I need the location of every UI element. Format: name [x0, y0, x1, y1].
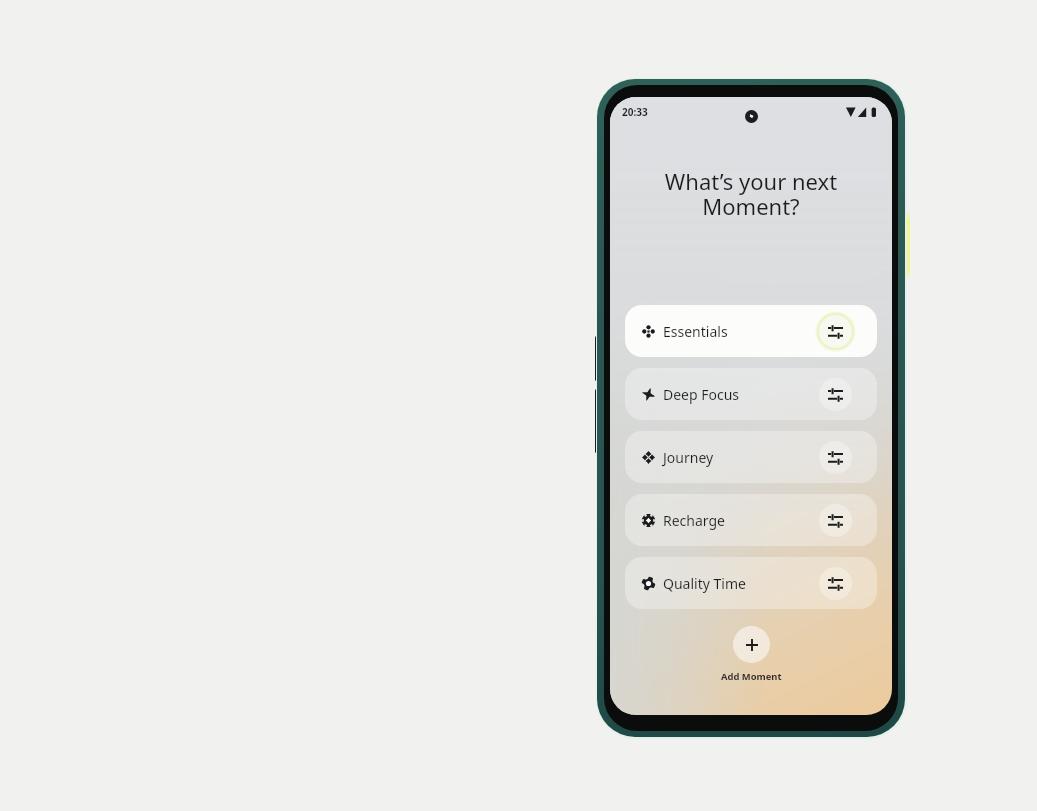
staticText: Essentials: [663, 322, 728, 341]
button[interactable]: Deep Focus: [625, 368, 877, 420]
button[interactable]: Adjust Journey: [815, 437, 856, 478]
button[interactable]: Add Moment: [733, 626, 770, 663]
button[interactable]: Quality Time: [625, 557, 877, 609]
staticText: Journey: [663, 448, 714, 467]
staticText: 20:33: [622, 105, 648, 119]
staticText: Deep Focus: [663, 385, 740, 404]
button[interactable]: Recharge: [625, 494, 877, 546]
staticText: Recharge: [663, 511, 725, 530]
staticText: Quality Time: [663, 574, 746, 593]
staticText: Add Moment: [721, 670, 782, 683]
button[interactable]: Adjust Recharge: [815, 500, 856, 541]
button[interactable]: Adjust Essentials: [815, 311, 856, 352]
button[interactable]: Journey: [625, 431, 877, 483]
button[interactable]: Essentials: [625, 305, 877, 357]
button[interactable]: Adjust Deep Focus: [815, 374, 856, 415]
button[interactable]: Adjust Quality Time: [815, 563, 856, 604]
staticText: What’s your next Moment?: [610, 166, 892, 222]
